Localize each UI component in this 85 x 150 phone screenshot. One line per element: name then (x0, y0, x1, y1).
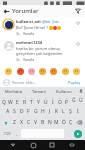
staticText: Ğ (72, 97, 76, 104)
button[interactable]: Ç (67, 117, 74, 128)
staticText: 5 (31, 96, 33, 99)
button[interactable]: Filter (72, 5, 84, 17)
button[interactable]: Emoji (38, 67, 47, 76)
button[interactable]: Emoji (72, 67, 81, 76)
button[interactable]: X (18, 117, 25, 128)
button[interactable]: Send (71, 128, 84, 139)
button[interactable]: A (4, 106, 11, 117)
button[interactable]: Period (65, 128, 71, 139)
staticText: mehmet1234 (16, 40, 43, 45)
button[interactable]: Recents (46, 140, 58, 150)
button[interactable]: Emoji (61, 67, 70, 76)
staticText: Yorumlar (12, 7, 39, 15)
button[interactable]: 8 (49, 95, 56, 106)
button[interactable]: Yanıtla (23, 31, 35, 36)
button[interactable]: Comma (14, 128, 20, 139)
button[interactable]: Tamam (26, 87, 51, 95)
button[interactable]: Back (7, 140, 19, 150)
staticText: Bu? Şune Hîrsel ? (16, 25, 48, 30)
button[interactable]: J (46, 106, 53, 117)
button[interactable]: Paylaş (67, 80, 82, 85)
button[interactable]: Voice input (76, 87, 85, 95)
staticText: Paylaş (68, 80, 81, 85)
staticText: Ü (79, 97, 83, 104)
button[interactable]: C (25, 117, 32, 128)
staticText: . (67, 131, 69, 136)
staticText: C (27, 119, 31, 126)
button[interactable]: 9 (56, 95, 63, 106)
button[interactable]: 4 (21, 95, 28, 106)
button[interactable]: Yorum ekle... (12, 80, 67, 85)
staticText: I (52, 99, 54, 106)
staticText: 6 (38, 96, 40, 99)
staticText: harika bir yorum olmuş gerçekten çok beğ… (16, 46, 72, 56)
staticText: X (20, 119, 23, 126)
button[interactable]: Emoji (27, 67, 36, 76)
button[interactable]: K (53, 106, 60, 117)
staticText: 4 (24, 96, 26, 99)
staticText: W (8, 99, 13, 106)
button[interactable]: H (39, 106, 46, 117)
button[interactable]: B (39, 117, 46, 128)
button[interactable]: G (32, 106, 39, 117)
button[interactable]: mehmet1234 (0, 38, 85, 64)
button[interactable]: Ö (60, 117, 67, 128)
staticText: Tamam (32, 89, 46, 94)
button[interactable]: N (46, 117, 53, 128)
button[interactable]: Emoji (16, 67, 25, 76)
staticText: kullanici_adi (16, 19, 41, 24)
button[interactable]: Merhaba (0, 87, 26, 95)
staticText: U (44, 99, 48, 106)
button[interactable]: Like (74, 19, 82, 27)
button[interactable]: Home (27, 140, 39, 150)
button[interactable]: I (74, 106, 81, 117)
button[interactable]: 7 (42, 95, 49, 106)
button[interactable]: Emoji (49, 67, 58, 76)
button[interactable]: Yanıtla (23, 57, 35, 62)
button[interactable]: Back (0, 5, 12, 17)
button[interactable]: D (18, 106, 25, 117)
button[interactable]: M (53, 117, 60, 128)
staticText: Q (2, 99, 6, 106)
staticText: 3 (17, 96, 19, 99)
staticText: 3s (16, 31, 20, 36)
staticText: 2 (10, 96, 12, 99)
button[interactable]: 2 (7, 95, 14, 106)
button[interactable]: 1 (1, 95, 7, 106)
staticText: L (62, 108, 65, 115)
button[interactable]: Keyboard (66, 140, 78, 150)
button[interactable]: ?123 (2, 129, 13, 138)
staticText: Kullanıcı (56, 89, 72, 94)
button[interactable]: V (32, 117, 39, 128)
button[interactable]: Ğ (70, 95, 77, 106)
staticText: F (27, 108, 30, 115)
button[interactable]: kullanici_adi (0, 17, 85, 38)
button[interactable]: 3 (14, 95, 21, 106)
button[interactable]: Like (74, 40, 82, 48)
staticText: O (58, 99, 62, 106)
button[interactable]: Ş (67, 106, 74, 117)
staticText: Merhaba (5, 89, 22, 94)
staticText: @bir_kisi (42, 19, 59, 24)
button[interactable]: Z (11, 117, 18, 128)
staticText: I (77, 108, 79, 115)
button[interactable]: 0 (63, 95, 70, 106)
staticText: 0 (66, 96, 68, 99)
button[interactable]: Backspace (75, 118, 83, 127)
button[interactable]: 6 (35, 95, 42, 106)
staticText: P (65, 99, 69, 106)
button[interactable]: 5 (28, 95, 35, 106)
staticText: A (6, 108, 10, 115)
button[interactable]: Emoji (4, 67, 13, 76)
button[interactable]: S (11, 106, 18, 117)
button[interactable]: Shift (2, 118, 10, 127)
button[interactable]: Ü (77, 95, 84, 106)
button[interactable]: Kullanıcı (51, 87, 76, 95)
button[interactable]: L (60, 106, 67, 117)
staticText: B (41, 119, 45, 126)
staticText: E (16, 99, 19, 106)
staticText: ?123 (4, 132, 11, 136)
staticText: 9 (59, 96, 61, 99)
button[interactable]: F (25, 106, 32, 117)
